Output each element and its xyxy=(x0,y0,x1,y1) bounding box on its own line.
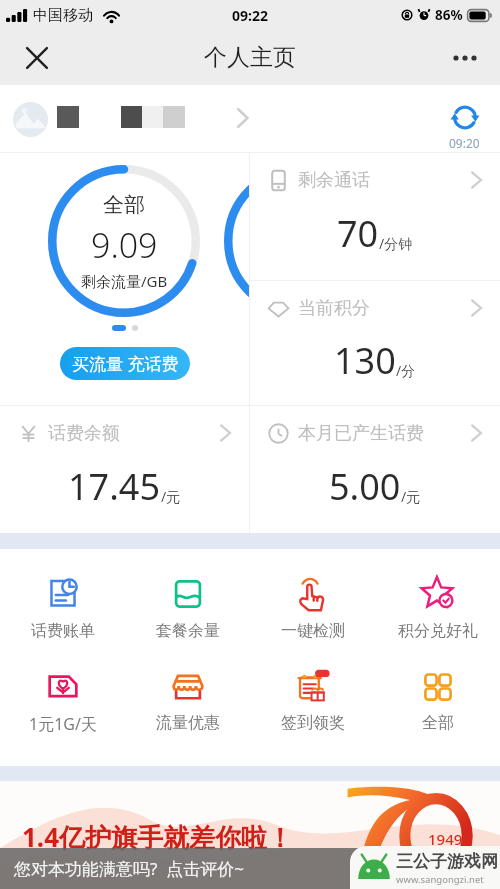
button[interactable]: 全部 xyxy=(375,668,500,733)
staticText: 流量优惠 xyxy=(156,713,220,733)
button[interactable]: 1949 xyxy=(0,781,500,889)
staticText: 三公子游戏网 xyxy=(396,851,498,872)
button[interactable]: 话费余额 xyxy=(0,406,249,533)
button[interactable]: 签到领奖 xyxy=(250,668,375,733)
staticText: 全部 xyxy=(422,713,454,733)
staticText: 当前积分 xyxy=(298,297,370,320)
button[interactable]: Close xyxy=(18,39,56,77)
button[interactable]: 您对本功能满意吗? 点击评价~ xyxy=(0,848,500,889)
button[interactable]: Refresh xyxy=(0,85,500,152)
staticText: www.sangongzi.net xyxy=(396,873,484,886)
staticText: 积分兑好礼 xyxy=(398,621,478,641)
staticText: 17.45 xyxy=(68,462,161,511)
staticText: 买流量 充话费 xyxy=(72,352,179,375)
staticText: 本月已产生话费 xyxy=(298,422,424,445)
button[interactable]: 套餐余量 xyxy=(125,576,250,641)
staticText: 9.09 xyxy=(91,222,158,268)
staticText: 签到领奖 xyxy=(281,713,345,733)
button[interactable]: 本月已产生话费 xyxy=(250,406,500,533)
staticText: /元 xyxy=(161,487,181,506)
staticText: 130 xyxy=(334,336,396,385)
staticText: 套餐余量 xyxy=(156,621,220,641)
button[interactable]: 1元1G/天 xyxy=(0,668,125,735)
button[interactable]: More options xyxy=(446,39,484,77)
staticText: 中国移动 xyxy=(33,6,93,25)
staticText: 1.4亿护旗手就差你啦！ xyxy=(22,819,294,855)
staticText: 一键检测 xyxy=(281,621,345,641)
staticText: 剩余流量/GB xyxy=(81,271,168,291)
staticText: 09:20 xyxy=(449,135,480,151)
button[interactable]: 积分兑好礼 xyxy=(375,576,500,641)
staticText: 86% xyxy=(435,6,463,24)
staticText: 1949 xyxy=(428,829,463,849)
staticText: 您对本功能满意吗? 点击评价~ xyxy=(14,857,244,880)
staticText: 话费账单 xyxy=(31,621,95,641)
staticText: 5.00 xyxy=(329,462,401,511)
staticText: 70 xyxy=(337,209,379,258)
staticText: 1元1G/天 xyxy=(29,713,97,735)
button[interactable]: Refresh xyxy=(449,103,480,151)
button[interactable]: 话费账单 xyxy=(0,576,125,641)
button[interactable]: 当前积分 xyxy=(250,281,500,405)
staticText: 话费余额 xyxy=(48,422,120,445)
button[interactable]: 剩余通话 xyxy=(250,153,500,280)
staticText: 09:22 xyxy=(232,6,268,25)
button[interactable]: 买流量 充话费 xyxy=(60,347,190,380)
staticText: /分 xyxy=(396,361,416,380)
staticText: 全部 xyxy=(103,192,145,218)
staticText: /元 xyxy=(401,487,421,506)
staticText: /分钟 xyxy=(379,234,413,253)
button[interactable]: 流量优惠 xyxy=(125,668,250,733)
staticText: 剩余通话 xyxy=(298,169,370,192)
staticText: 个人主页 xyxy=(204,43,296,72)
button[interactable]: 一键检测 xyxy=(250,576,375,641)
